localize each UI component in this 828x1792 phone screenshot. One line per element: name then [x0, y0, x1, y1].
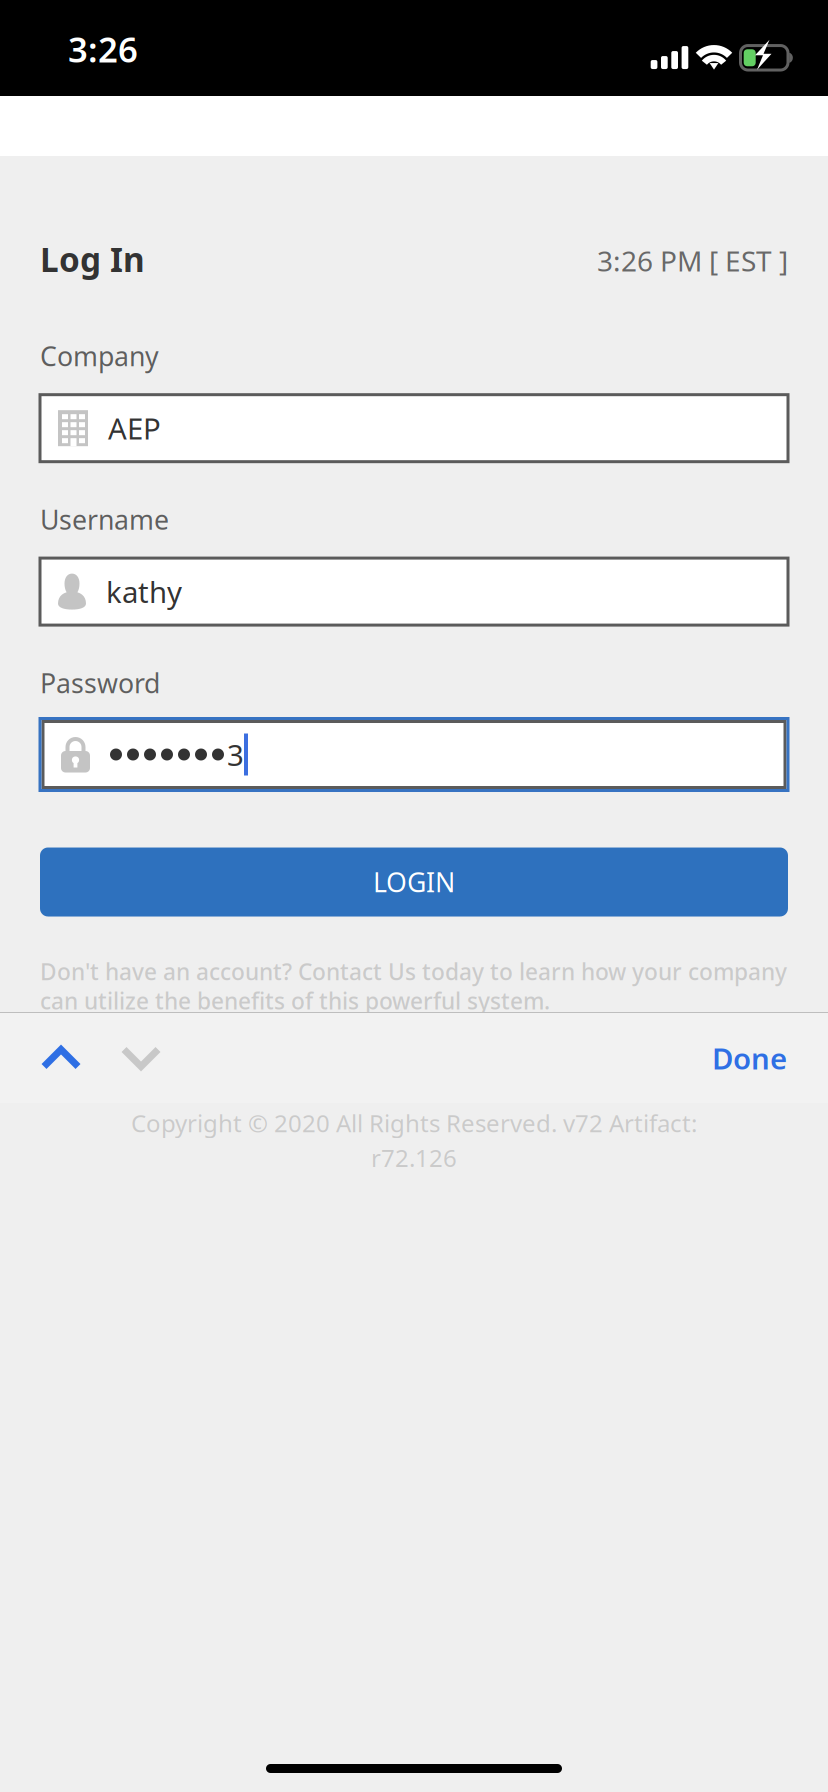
staticText: can utilize the benefits of this powerfu…	[40, 986, 550, 1016]
button[interactable]: Previous field	[21, 1014, 101, 1102]
staticText: 3	[227, 735, 244, 774]
staticText: Username	[40, 502, 169, 537]
staticText: Copyright © 2020 All Rights Reserved. v7…	[131, 1107, 697, 1139]
button[interactable]: Done	[657, 1013, 787, 1103]
staticText: AEP	[108, 409, 161, 448]
staticText: Company	[40, 338, 159, 374]
staticText: Log In	[40, 237, 145, 281]
staticText: Password	[40, 665, 160, 700]
staticText: 3:26	[68, 26, 138, 72]
staticText: Done	[712, 1038, 787, 1077]
staticText: kathy	[106, 572, 182, 611]
button[interactable]: LOGIN	[40, 847, 788, 916]
staticText: 3:26 PM [ EST ]	[597, 242, 788, 279]
staticText: LOGIN	[373, 864, 455, 900]
staticText: Don't have an account? Contact Us today …	[40, 956, 787, 987]
button[interactable]: Next field	[101, 1014, 181, 1102]
staticText: r72.126	[371, 1142, 457, 1174]
